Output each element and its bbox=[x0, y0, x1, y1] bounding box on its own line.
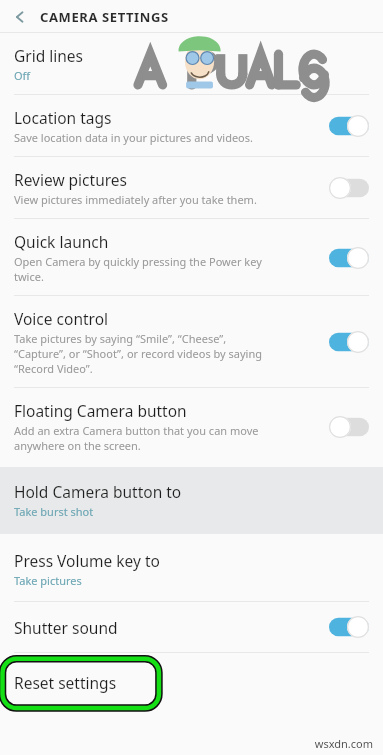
button[interactable]: Review pictures bbox=[0, 157, 383, 218]
button[interactable]: Press Volume key to bbox=[0, 537, 383, 601]
button[interactable]: Shutter sound bbox=[0, 602, 383, 652]
button[interactable]: Floating Camera button bbox=[0, 388, 383, 464]
staticText: Floating Camera button bbox=[14, 400, 187, 421]
button[interactable]: Quick launch bbox=[0, 219, 383, 295]
staticText: CAMERA SETTINGS bbox=[40, 8, 169, 26]
staticText: Shutter sound bbox=[14, 617, 118, 638]
staticText: View pictures immediately after you take… bbox=[14, 192, 257, 207]
staticText: Take pictures bbox=[14, 573, 82, 588]
staticText: Take burst shot bbox=[14, 504, 94, 519]
staticText: Voice control bbox=[14, 308, 109, 329]
button[interactable]: Voice control bbox=[0, 296, 383, 387]
button[interactable]: Location tags bbox=[0, 95, 383, 156]
staticText: Save location data in your pictures and … bbox=[14, 130, 253, 145]
button[interactable]: Grid lines bbox=[0, 33, 383, 94]
staticText: Quick launch bbox=[14, 231, 109, 252]
staticText: Take pictures by saying “Smile”, “Cheese… bbox=[14, 331, 262, 376]
staticText: Open Camera by quickly pressing the Powe… bbox=[14, 254, 262, 284]
staticText: Grid lines bbox=[14, 45, 83, 66]
staticText: Review pictures bbox=[14, 169, 127, 190]
staticText: Off bbox=[14, 68, 31, 83]
staticText: Reset settings bbox=[14, 672, 117, 693]
button[interactable]: Back bbox=[0, 0, 40, 33]
staticText: wsxdn.com bbox=[314, 736, 373, 751]
button[interactable]: Hold Camera button to bbox=[0, 467, 383, 534]
button[interactable]: Reset settings bbox=[0, 653, 383, 711]
staticText: Location tags bbox=[14, 107, 112, 128]
staticText: Add an extra Camera button that you can … bbox=[14, 423, 259, 453]
staticText: Hold Camera button to bbox=[14, 481, 182, 502]
staticText: Press Volume key to bbox=[14, 550, 160, 571]
